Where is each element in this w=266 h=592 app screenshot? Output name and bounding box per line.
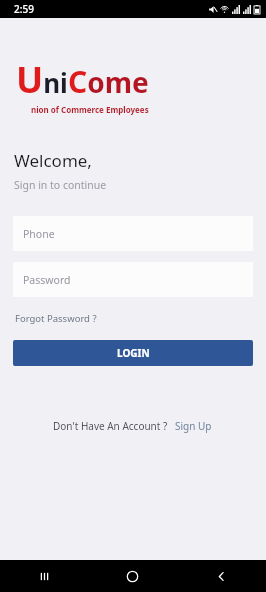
staticText: Sign Up xyxy=(175,419,212,433)
button[interactable]: Phone xyxy=(13,216,253,251)
staticText: Welcome, xyxy=(14,149,92,172)
staticText: Sign in to continue xyxy=(14,178,107,192)
button[interactable]: LOGIN xyxy=(13,340,253,366)
staticText: Phone xyxy=(23,227,55,241)
staticText: UniCome xyxy=(16,55,149,104)
button[interactable]: Forgot Password ? xyxy=(13,310,99,327)
button[interactable]: Password xyxy=(13,262,253,297)
staticText: LOGIN xyxy=(117,346,150,360)
staticText: Forgot Password ? xyxy=(15,312,97,325)
staticText: Don't Have An Account ? xyxy=(53,419,168,433)
staticText: Password xyxy=(23,273,71,287)
staticText: 2:59 xyxy=(14,2,34,16)
button[interactable]: Sign Up xyxy=(173,417,214,435)
button[interactable]: Home xyxy=(88,560,177,592)
staticText: nion of Commerce Employees xyxy=(31,104,149,115)
button[interactable]: Back xyxy=(177,560,266,592)
button[interactable]: Recents xyxy=(0,560,88,592)
